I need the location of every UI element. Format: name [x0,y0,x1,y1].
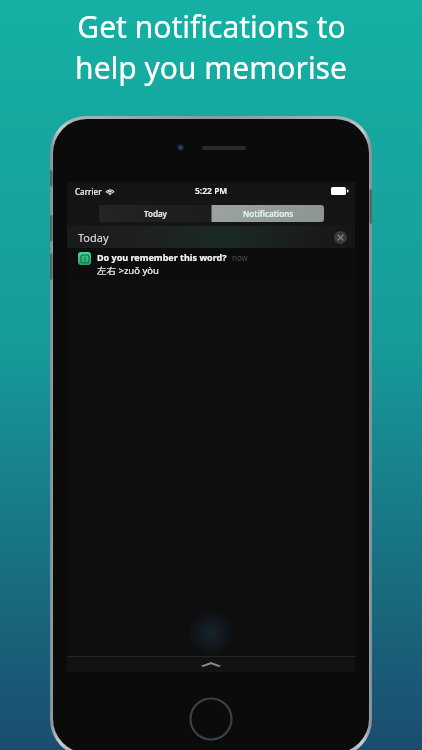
button[interactable]: Close notification center [200,660,222,668]
staticText: Notifications [243,208,294,219]
staticText: Today [78,230,109,245]
staticText: help you memorise [75,47,347,88]
button[interactable]: Notifications [212,205,324,222]
staticText: Do you remember this word? [97,251,227,263]
staticText: now [232,252,248,263]
staticText: Today [144,208,167,219]
staticText: Get notifications to [77,6,346,47]
other: Home [189,697,233,741]
staticText: Carrier [75,186,102,197]
staticText: 左右 >zuǒ yòu [97,264,159,277]
button[interactable]: Do you remember this word? [67,248,355,282]
button[interactable]: Clear notifications [334,231,347,244]
button[interactable]: Today [99,205,211,222]
staticText: 5:22 PM [195,185,228,197]
